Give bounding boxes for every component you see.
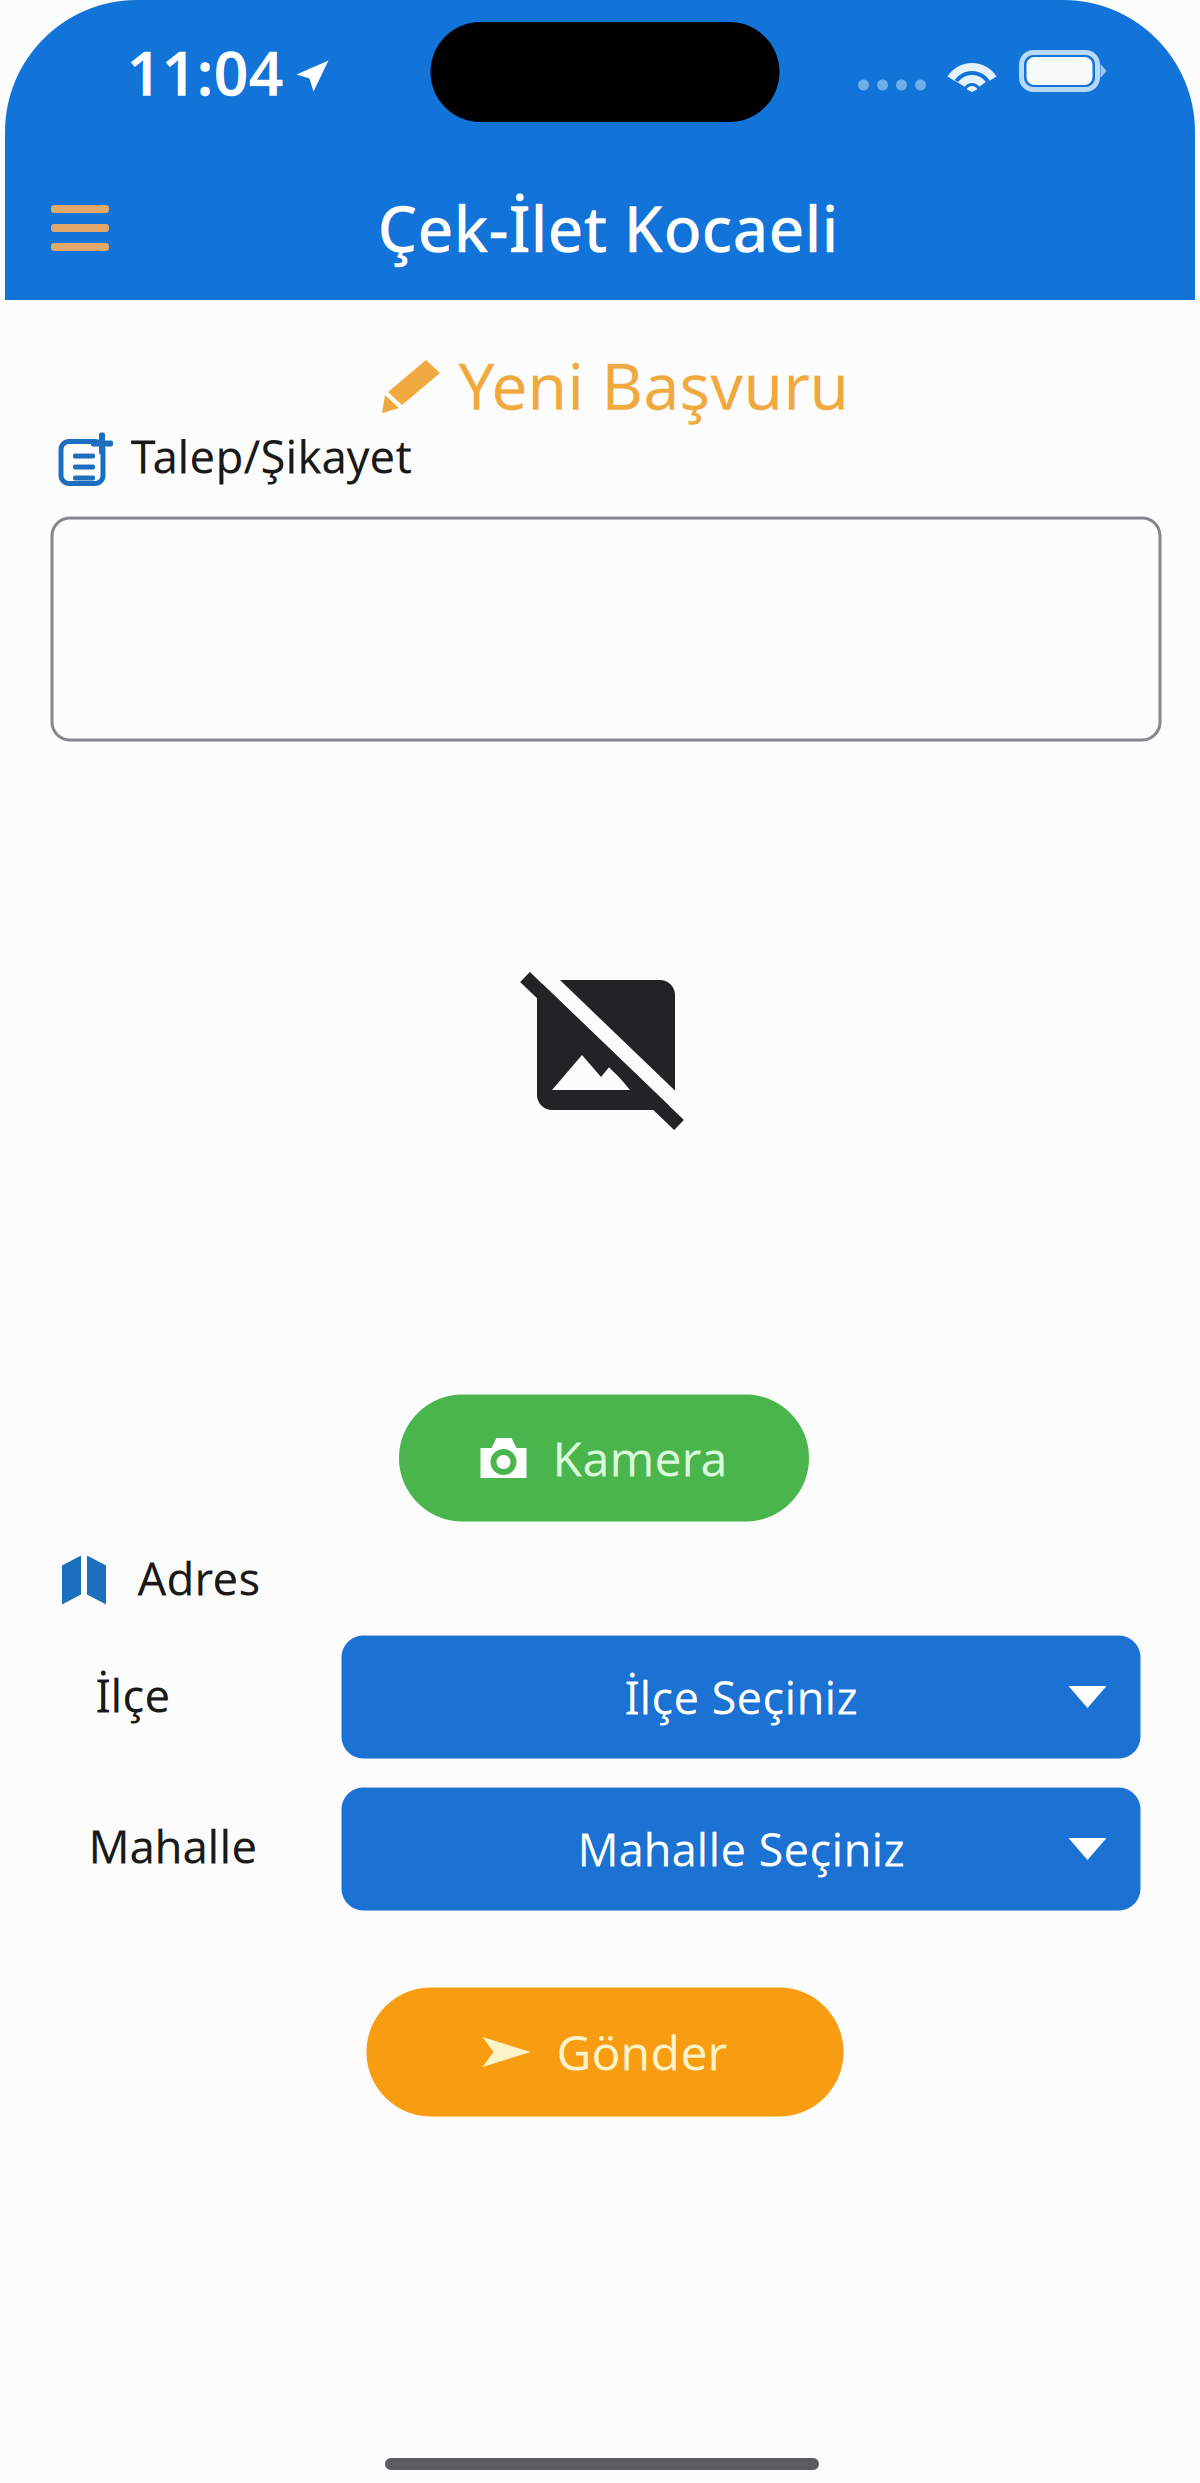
- staticText: 11:04: [126, 31, 283, 113]
- staticText: Mahalle Seçiniz: [577, 1819, 904, 1879]
- staticText: İlçe: [95, 1665, 170, 1725]
- button[interactable]: Kamera: [399, 1394, 809, 1521]
- staticText: Yeni Başvuru: [458, 342, 849, 427]
- staticText: Gönder: [556, 2020, 727, 2084]
- staticText: Talep/Şikayet: [130, 426, 411, 486]
- staticText: İlçe Seçiniz: [624, 1667, 857, 1727]
- button[interactable]: İlçe Seçiniz: [341, 1635, 1140, 1758]
- button[interactable]: Menu: [30, 184, 130, 272]
- staticText: Adres: [137, 1548, 260, 1608]
- button[interactable]: Gönder: [366, 1987, 843, 2116]
- staticText: Mahalle: [88, 1816, 257, 1876]
- staticText: Çek-İlet Kocaeli: [377, 186, 838, 270]
- staticText: Kamera: [552, 1426, 727, 1490]
- button[interactable]: Mahalle Seçiniz: [341, 1787, 1140, 1910]
